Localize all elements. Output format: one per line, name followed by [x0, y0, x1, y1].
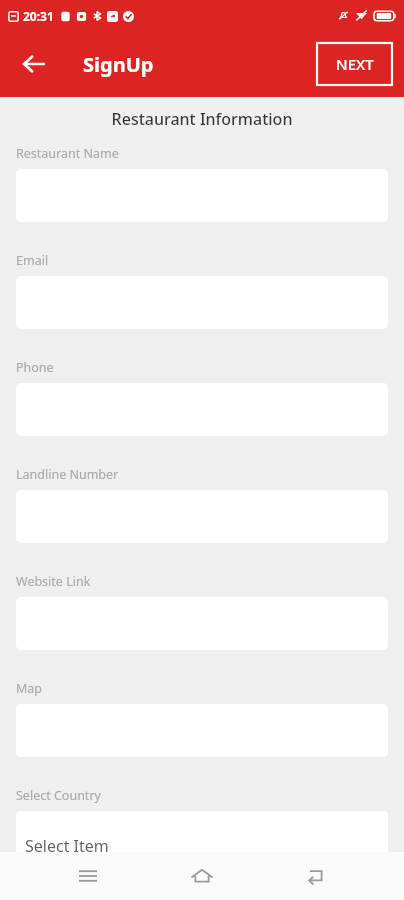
staticText: 20:31: [23, 8, 54, 24]
button[interactable]: NEXT: [317, 43, 392, 85]
button[interactable]: Back: [14, 44, 54, 84]
button[interactable]: Recent apps: [62, 852, 114, 900]
staticText: Phone: [16, 359, 54, 376]
staticText: Restaurant Name: [16, 145, 119, 162]
staticText: Select Country: [16, 787, 101, 804]
button[interactable]: Home: [176, 852, 228, 900]
staticText: Landline Number: [16, 466, 119, 483]
button[interactable]: Select Item: [16, 811, 388, 881]
staticText: NEXT: [336, 54, 374, 74]
staticText: Email: [16, 252, 49, 269]
staticText: Map: [16, 680, 43, 697]
staticText: SignUp: [83, 51, 154, 78]
staticText: Restaurant Information: [0, 108, 404, 130]
staticText: Website Link: [16, 573, 91, 590]
staticText: Select Item: [25, 835, 109, 857]
button[interactable]: Back: [290, 852, 342, 900]
